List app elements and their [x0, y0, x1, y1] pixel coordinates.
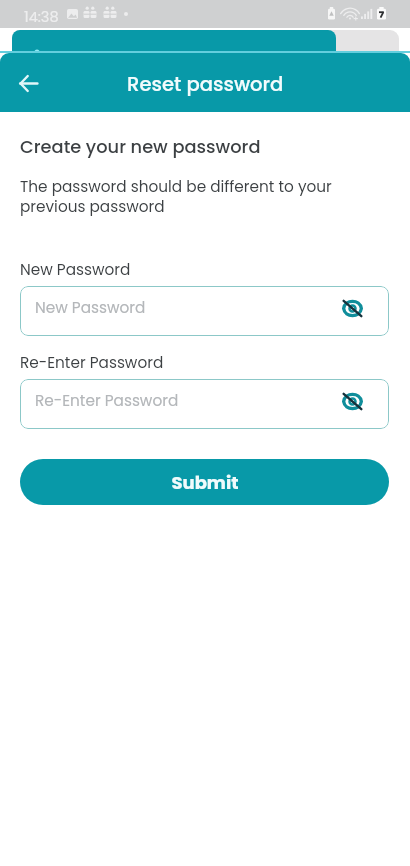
staticText: Create your new password [20, 134, 261, 159]
button[interactable]: Re-Enter Password [20, 379, 389, 429]
button[interactable]: Toggle password visibility [334, 290, 370, 326]
button[interactable]: Back [6, 61, 50, 105]
staticText: 14:38 [24, 7, 59, 27]
button[interactable]: New Password [20, 286, 389, 336]
staticText: New Password [35, 297, 146, 318]
staticText: Re-Enter Password [35, 390, 179, 411]
button[interactable]: Submit [20, 459, 389, 505]
button[interactable]: Toggle password visibility [334, 383, 370, 419]
staticText: New Password [20, 259, 131, 280]
staticText: Submit [171, 470, 239, 495]
staticText: Re-Enter Password [20, 352, 164, 373]
staticText: The password should be different to your… [20, 176, 350, 217]
staticText: Reset password [127, 70, 284, 97]
